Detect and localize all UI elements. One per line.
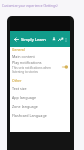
button[interactable]: Progress <box>57 36 63 42</box>
staticText: App language <box>12 95 37 100</box>
staticText: Main content <box>12 54 35 59</box>
staticText: Zone language <box>12 104 38 109</box>
staticText: General <box>12 47 25 52</box>
staticText: Customize your experience (Settings) <box>2 4 58 8</box>
staticText: Flashcard Language <box>12 113 47 118</box>
button[interactable]: App language <box>12 93 68 102</box>
staticText: Text size <box>12 86 27 91</box>
button[interactable]: Play notifications <box>12 60 68 74</box>
staticText: Other <box>12 78 22 83</box>
button[interactable]: Flashcard Language <box>12 111 68 120</box>
button[interactable]: Main content <box>12 52 68 60</box>
button[interactable]: Back <box>13 36 19 42</box>
button[interactable]: Account <box>51 36 57 42</box>
staticText: This sets notifications when listening t… <box>12 66 59 74</box>
staticText: Simply Learn Sa… <box>21 37 51 42</box>
button[interactable]: Zone language <box>12 102 68 111</box>
staticText: Play notifications <box>12 60 42 65</box>
button[interactable]: More options <box>63 37 68 42</box>
button[interactable]: Text size <box>12 84 68 93</box>
button[interactable]: Toggle notifications <box>61 65 68 69</box>
